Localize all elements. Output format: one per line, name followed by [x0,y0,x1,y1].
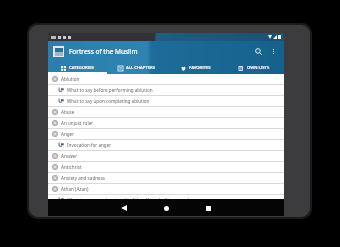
button[interactable]: CATEGORIES [48,61,107,74]
button[interactable]: More options [267,45,279,57]
staticText: Antichrist [61,164,280,170]
staticText: Anxiety and sadness [61,175,280,181]
button[interactable]: App icon [53,46,64,57]
button[interactable]: ALL CHAPTERS [107,61,166,74]
button[interactable]: What to say upon completing ablution [48,96,284,106]
staticText: What to say upon completing ablution [67,98,280,104]
button[interactable]: Anger [48,129,284,139]
staticText: Fortress of the Muslim [69,47,251,56]
button[interactable]: What to say before performing ablution [48,85,284,95]
staticText: Athan (Azan) [61,186,280,192]
staticText: Battle [61,206,280,209]
staticText: FAVORITES [189,65,211,71]
staticText: ALL CHAPTERS [126,65,156,71]
staticText: OWN LISTS [247,65,270,71]
button[interactable]: Search [251,44,265,58]
button[interactable]: Antichrist [48,162,284,172]
button[interactable]: Abuse [48,107,284,117]
button[interactable]: Ablution [48,74,284,84]
button[interactable]: OWN LISTS [225,61,284,74]
staticText: Invocation for anger [67,142,280,148]
staticText: Ablution [61,76,280,82]
button[interactable]: Battle [48,206,284,209]
staticText: What to say upon hearing the Athan/Azan … [67,197,280,203]
button[interactable]: An unjust ruler [48,118,284,128]
button[interactable]: FAVORITES [166,61,225,74]
button[interactable]: Home [158,200,174,216]
staticText: Anger [61,131,280,137]
staticText: Answer [61,153,280,159]
button[interactable]: What to say upon hearing the Athan/Azan … [48,195,284,205]
staticText: What to say before performing ablution [67,87,280,93]
button[interactable]: Back [116,200,132,216]
staticText: CATEGORIES [69,65,94,71]
button[interactable]: Athan (Azan) [48,184,284,194]
button[interactable]: Recent apps [200,200,216,216]
button[interactable]: Anxiety and sadness [48,173,284,183]
staticText: Abuse [61,109,280,115]
staticText: An unjust ruler [61,120,280,126]
button[interactable]: Answer [48,151,284,161]
button[interactable]: Invocation for anger [48,140,284,150]
